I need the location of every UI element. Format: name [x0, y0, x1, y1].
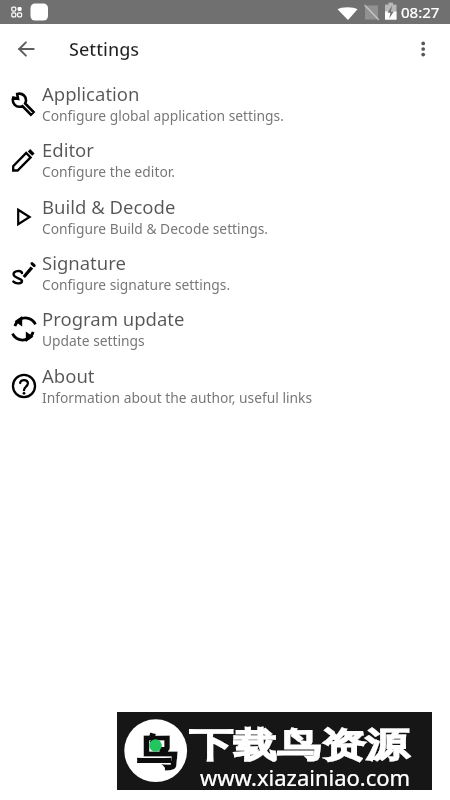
- staticText: About: [42, 363, 95, 388]
- staticText: Configure Build & Decode settings.: [42, 219, 268, 238]
- staticText: 08:27: [401, 2, 440, 22]
- staticText: Information about the author, useful lin…: [42, 388, 313, 407]
- button[interactable]: Signature: [0, 243, 450, 300]
- staticText: 下载鸟资源: [189, 724, 409, 767]
- button[interactable]: About: [0, 356, 450, 413]
- button[interactable]: Program update: [0, 299, 450, 356]
- staticText: Program update: [42, 306, 185, 331]
- staticText: Build & Decode: [42, 194, 176, 219]
- button[interactable]: Build & Decode: [0, 187, 450, 244]
- staticText: Editor: [42, 137, 94, 162]
- staticText: Configure signature settings.: [42, 275, 231, 294]
- staticText: Signature: [42, 250, 126, 275]
- button[interactable]: Back: [6, 29, 46, 69]
- staticText: 鸟: [137, 728, 177, 775]
- button[interactable]: Application: [0, 74, 450, 131]
- staticText: Application: [42, 81, 140, 106]
- button[interactable]: More options: [402, 29, 442, 69]
- button[interactable]: Editor: [0, 130, 450, 187]
- staticText: Settings: [69, 37, 140, 62]
- staticText: www.xiazainiao.com: [200, 762, 411, 792]
- staticText: Update settings: [42, 331, 145, 350]
- staticText: Configure global application settings.: [42, 106, 284, 125]
- staticText: Configure the editor.: [42, 162, 175, 181]
